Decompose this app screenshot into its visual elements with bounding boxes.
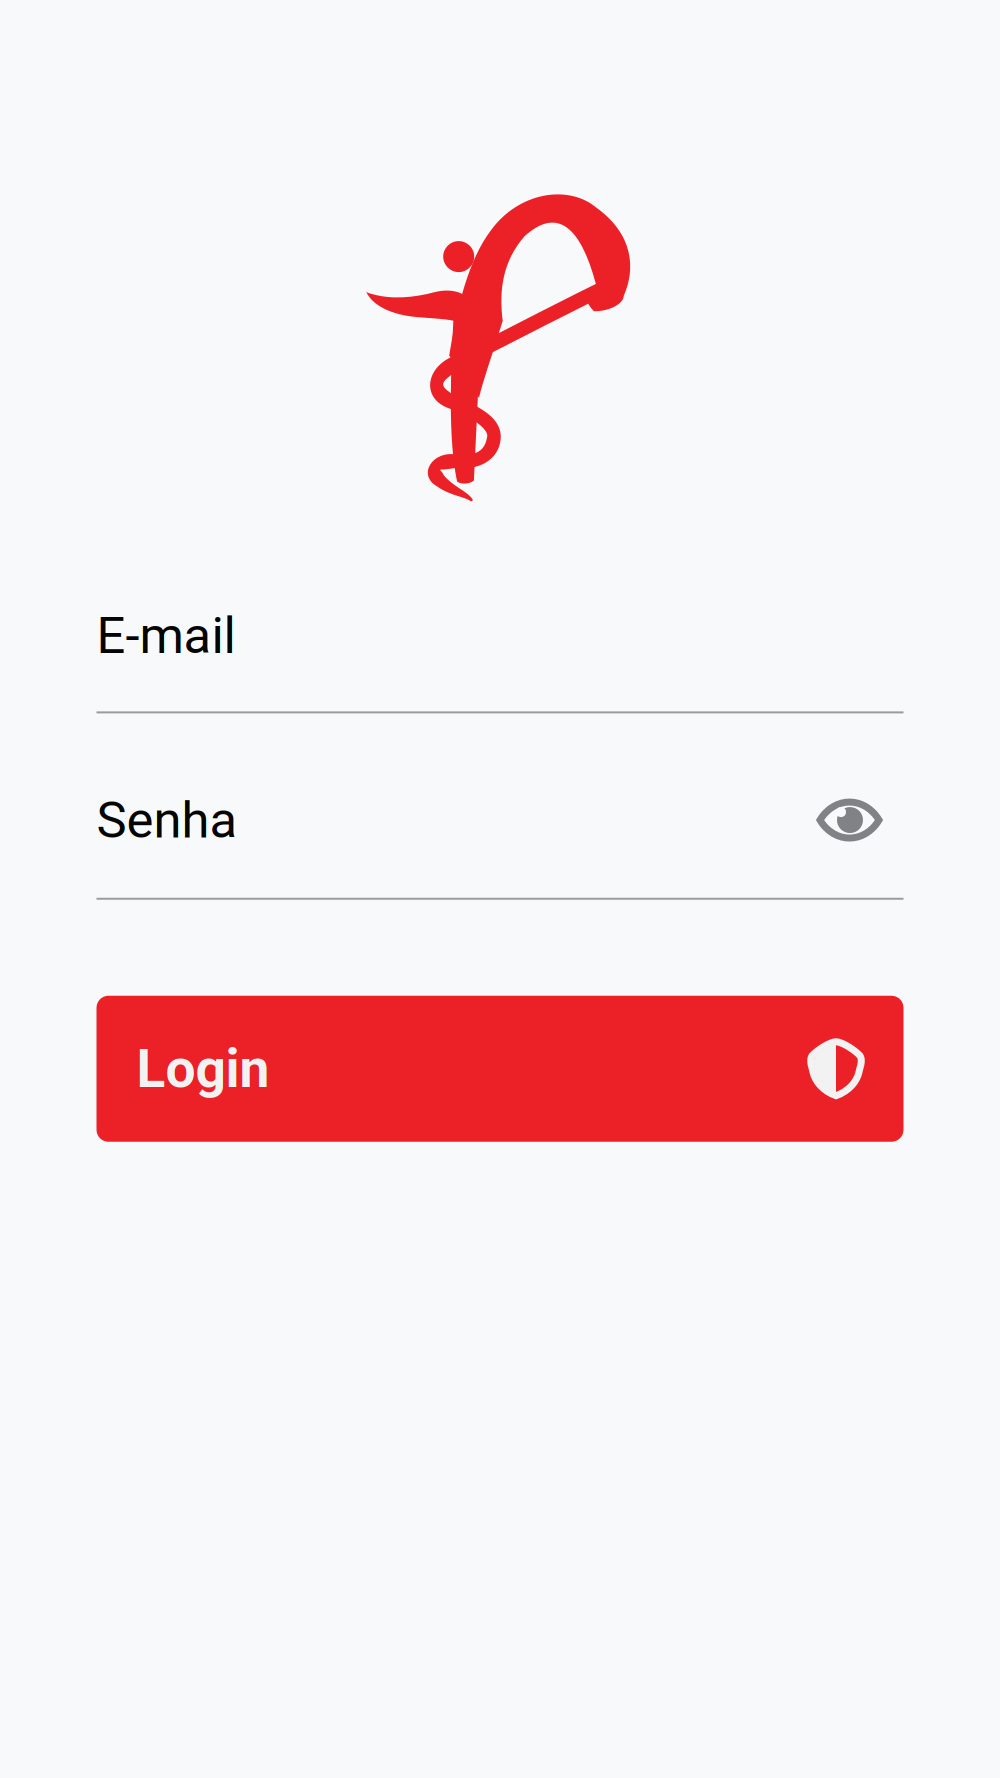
button[interactable]: Show password [816, 798, 903, 843]
button[interactable]: Login [96, 996, 903, 1142]
staticText: Senha [96, 790, 237, 850]
staticText: Login [136, 1037, 269, 1100]
staticText: E-mail [96, 606, 235, 665]
